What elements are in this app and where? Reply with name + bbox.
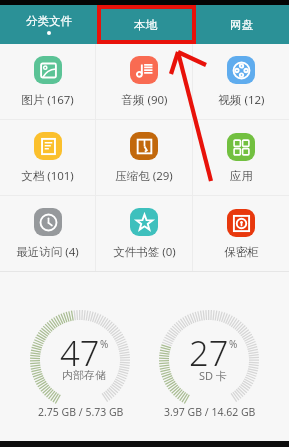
staticText: % <box>100 337 109 351</box>
button[interactable]: 网盘 <box>193 5 289 44</box>
staticText: 图片 (167) <box>21 92 74 108</box>
button[interactable]: 应用 <box>193 120 289 195</box>
staticText: 网盘 <box>230 18 253 32</box>
button[interactable]: 音频 (90) <box>96 44 192 119</box>
button[interactable]: 本地 <box>97 5 193 44</box>
button[interactable]: 图片 (167) <box>0 44 95 119</box>
staticText: 音频 (90) <box>121 92 168 108</box>
button[interactable]: 分类文件 <box>0 5 97 44</box>
staticText: 内部存储 <box>62 368 106 382</box>
button[interactable]: 保密柜 <box>193 196 289 271</box>
staticText: 本地 <box>134 18 157 32</box>
button[interactable]: 视频 (12) <box>193 44 289 119</box>
button[interactable]: 压缩包 (29) <box>96 120 192 195</box>
staticText: 47 <box>60 329 100 376</box>
staticText: 27 <box>189 329 229 376</box>
staticText: 文件书签 (0) <box>113 244 176 260</box>
staticText: % <box>229 337 238 351</box>
staticText: 2.75 GB / 5.73 GB <box>38 405 124 419</box>
staticText: 视频 (12) <box>218 92 265 108</box>
staticText: 分类文件 <box>26 14 72 28</box>
button[interactable]: 最近访问 (4) <box>0 196 95 271</box>
staticText: 压缩包 (29) <box>115 168 173 184</box>
staticText: 最近访问 (4) <box>16 244 79 260</box>
staticText: 保密柜 <box>224 245 259 259</box>
staticText: 文档 (101) <box>21 168 74 184</box>
staticText: 3.97 GB / 14.62 GB <box>164 405 256 419</box>
button[interactable]: 文件书签 (0) <box>96 196 192 271</box>
button[interactable]: 文档 (101) <box>0 120 95 195</box>
staticText: SD 卡 <box>199 368 227 383</box>
staticText: 应用 <box>230 169 253 183</box>
